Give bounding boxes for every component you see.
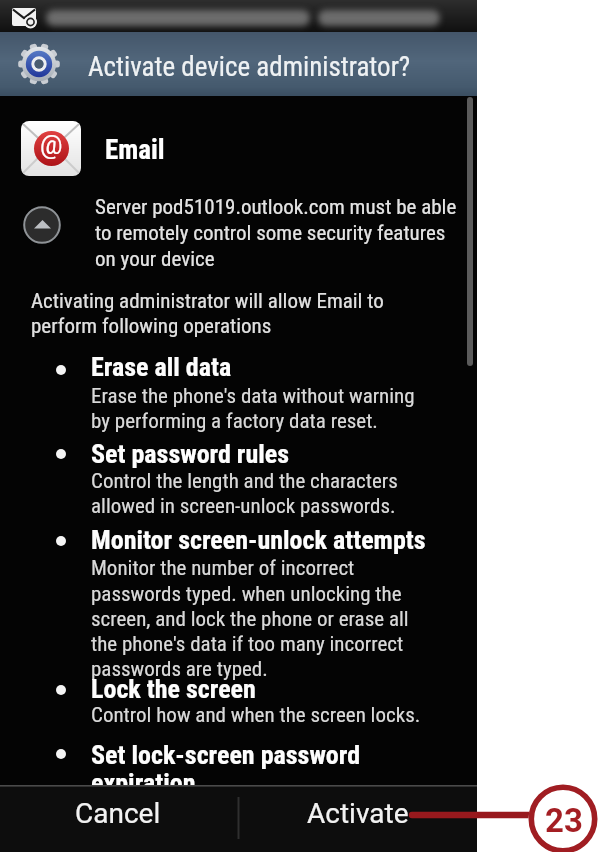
staticText: Email — [105, 134, 165, 166]
staticText: passwords typed. when unlocking the — [91, 582, 402, 607]
staticText: Control the length and the characters — [91, 469, 398, 494]
staticText: Activating administrator will allow Emai… — [31, 289, 384, 314]
staticText: Activate — [307, 797, 409, 830]
staticText: 23 — [545, 801, 583, 840]
staticText: Cancel — [75, 797, 161, 830]
staticText: Erase all data — [91, 352, 232, 382]
staticText: Set password rules — [91, 439, 290, 469]
staticText: Erase the phone's data without warning — [91, 384, 415, 409]
staticText: allowed in screen-unlock passwords. — [91, 494, 396, 519]
staticText: by performing a factory data reset. — [91, 409, 378, 434]
staticText: perform following operations — [31, 314, 272, 339]
staticText: Lock the screen — [91, 674, 256, 704]
staticText: Monitor the number of incorrect — [91, 556, 355, 581]
staticText: @ — [40, 131, 63, 160]
staticText: Activate device administrator? — [88, 51, 411, 83]
staticText: to remotely control some security featur… — [95, 221, 446, 246]
staticText: Monitor screen-unlock attempts — [91, 525, 426, 555]
staticText: Control how and when the screen locks. — [91, 703, 421, 728]
staticText: Set lock-screen password — [91, 740, 361, 770]
staticText: screen, and lock the phone or erase all — [91, 607, 409, 632]
staticText: passwords are typed. — [91, 657, 268, 682]
staticText: the phone's data if too many incorrect — [91, 632, 404, 657]
staticText: on your device — [95, 247, 215, 272]
staticText: Server pod51019.outlook.com must be able — [95, 195, 457, 220]
staticText: expiration — [91, 768, 196, 798]
